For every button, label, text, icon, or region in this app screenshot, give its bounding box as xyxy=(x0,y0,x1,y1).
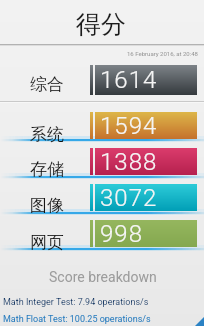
staticText: 1594 xyxy=(100,112,158,139)
staticText: 综合 xyxy=(30,74,64,95)
staticText: 998 xyxy=(100,220,143,247)
staticText: 得分 xyxy=(76,9,126,40)
button[interactable]: 1614 xyxy=(95,65,197,95)
staticText: Math Integer Test: 7.94 operations/s xyxy=(3,297,149,308)
button[interactable]: 图像 xyxy=(0,190,88,218)
button[interactable]: 998 xyxy=(95,220,197,247)
staticText: 1388 xyxy=(100,148,158,175)
button[interactable]: 存储 xyxy=(0,154,88,182)
button[interactable]: 1388 xyxy=(95,148,197,175)
staticText: 16 February 2016, at 20:48 xyxy=(127,50,198,57)
staticText: 1614 xyxy=(100,66,158,94)
button[interactable]: 综合 xyxy=(0,69,88,97)
staticText: Math Float Test: 100.25 operations/s xyxy=(3,314,151,325)
staticText: Score breakdown xyxy=(49,269,157,285)
button[interactable]: 3072 xyxy=(95,184,197,211)
staticText: 3072 xyxy=(100,184,158,211)
staticText: 网页 xyxy=(30,232,64,253)
button[interactable]: 1594 xyxy=(95,112,197,139)
button[interactable]: 系统 xyxy=(0,119,88,147)
staticText: 系统 xyxy=(30,124,64,145)
staticText: 存储 xyxy=(30,159,64,180)
button[interactable]: 网页 xyxy=(0,227,88,255)
staticText: 图像 xyxy=(30,195,64,216)
